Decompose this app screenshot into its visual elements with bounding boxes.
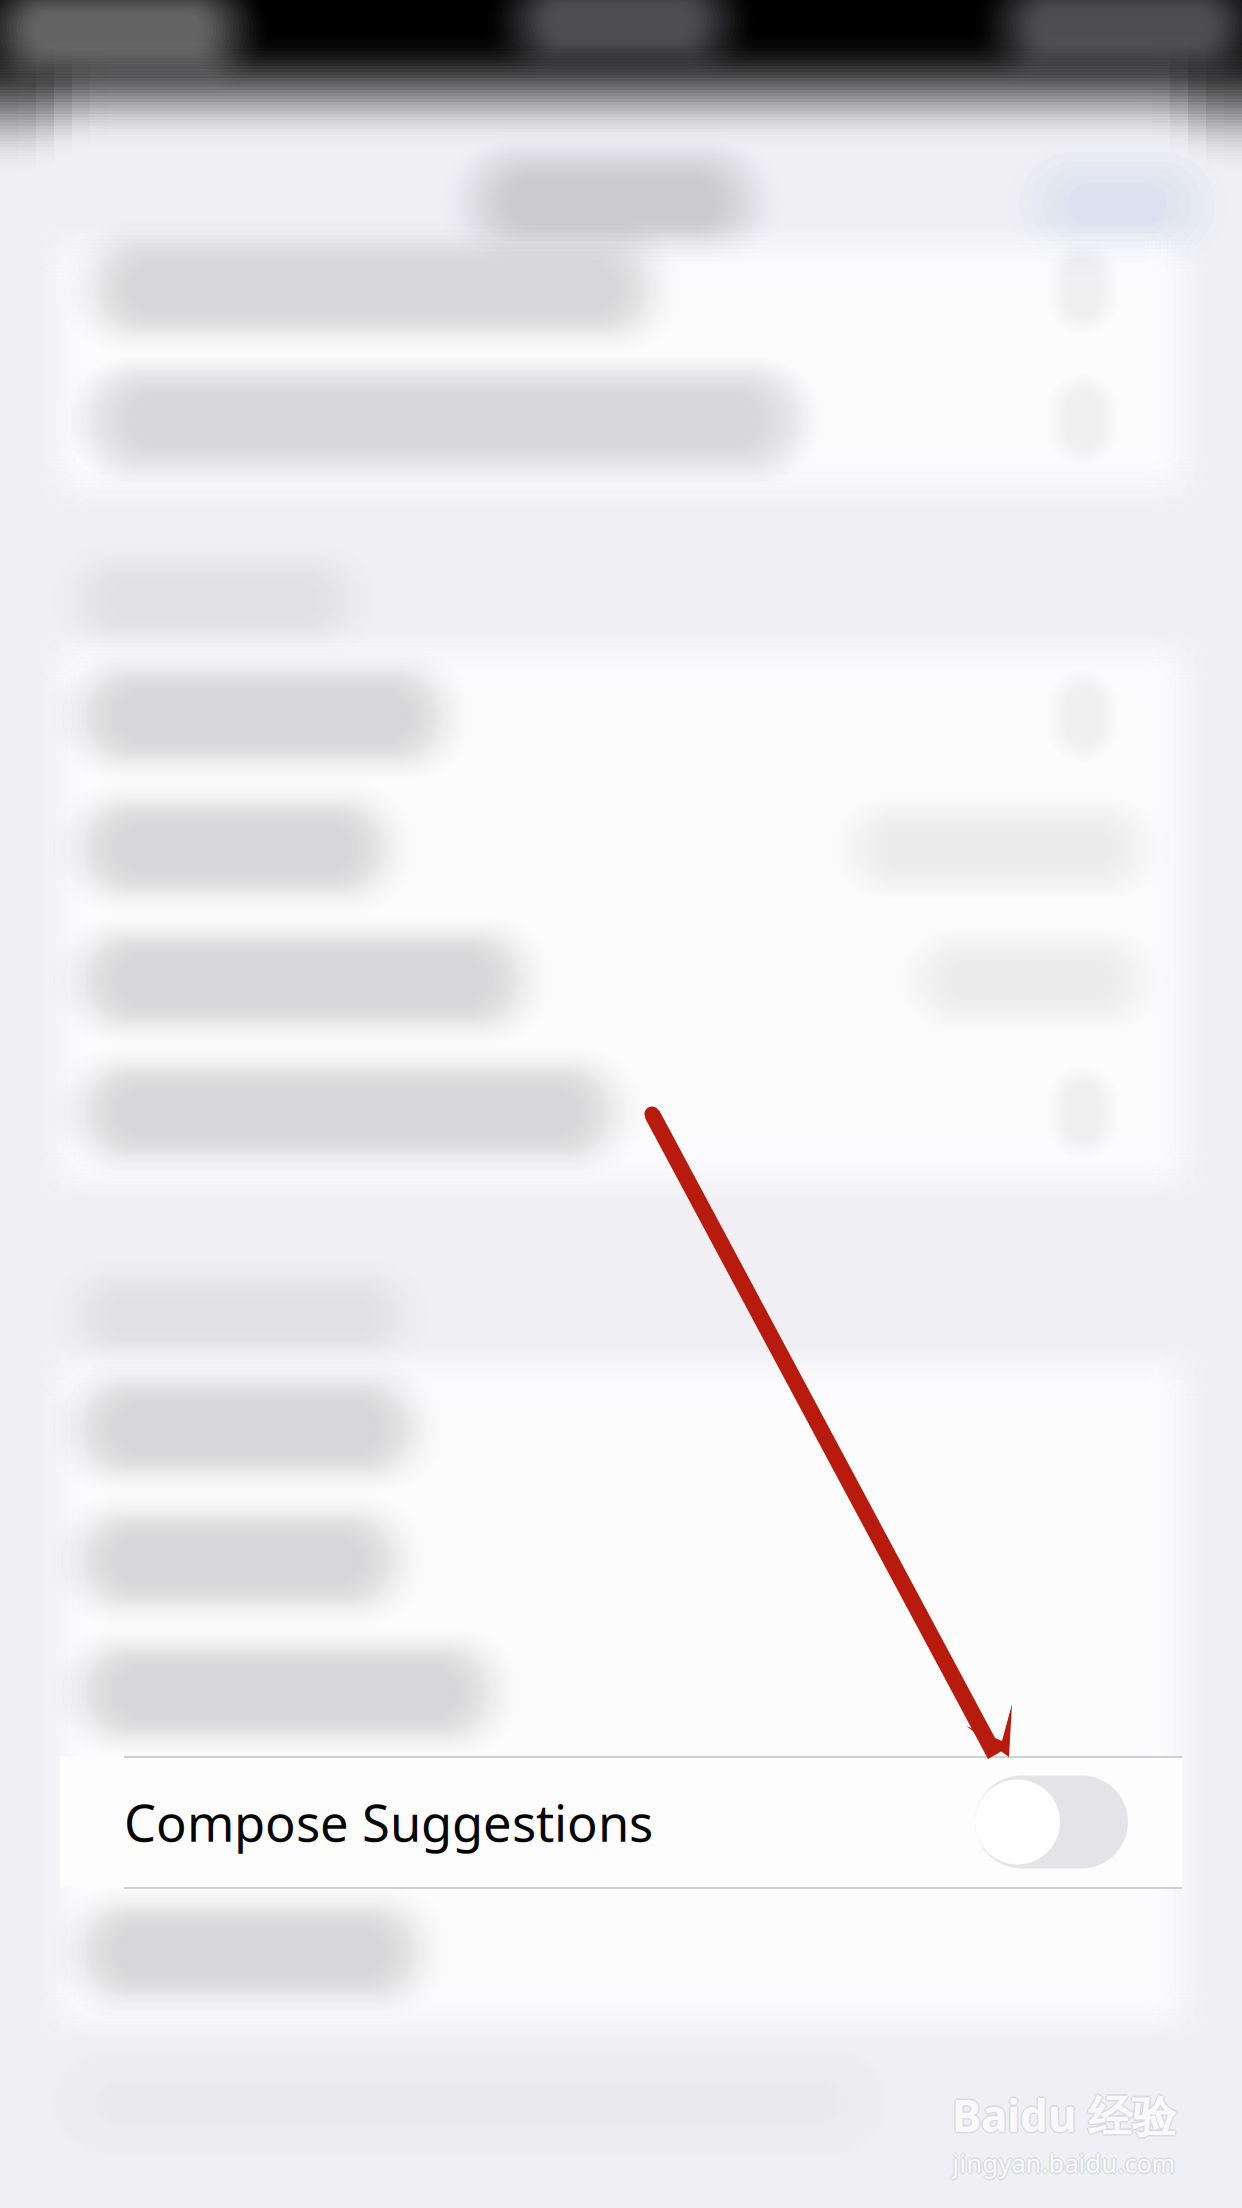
staticText: Baidu 经验 — [952, 2086, 1176, 2144]
staticText: Baidu 经验 — [952, 2087, 1176, 2146]
staticText: jingyan.baidu.com — [952, 2148, 1175, 2181]
staticText: Baidu 经验 — [954, 2086, 1178, 2144]
staticText: Baidu 经验 — [950, 2086, 1174, 2144]
staticText: Baidu 经验 — [952, 2084, 1176, 2143]
button[interactable]: Done — [1002, 140, 1232, 270]
button[interactable]: Compose Suggestions — [60, 1756, 1182, 1887]
staticText: Compose Suggestions — [124, 1788, 653, 1856]
staticText: jingyan.baidu.com — [951, 2146, 1174, 2180]
staticText: jingyan.baidu.com — [952, 2145, 1175, 2178]
staticText: jingyan.baidu.com — [952, 2146, 1175, 2180]
staticText: jingyan.baidu.com — [954, 2146, 1177, 2180]
